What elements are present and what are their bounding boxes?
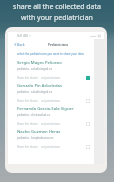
staticText: pediatria - saludintegral.es bbox=[17, 90, 53, 94]
staticText: set permissions bbox=[41, 99, 61, 103]
staticText: Share this doctor bbox=[17, 76, 38, 80]
staticText: Pediatricians bbox=[48, 43, 69, 47]
staticText: set permissions bbox=[41, 76, 61, 80]
button[interactable]: Back bbox=[13, 40, 26, 49]
staticText: 100% bbox=[90, 34, 97, 37]
staticText: Nacho Guzman Heras bbox=[17, 129, 61, 135]
staticText: pediatria - saludintegral.es bbox=[17, 67, 53, 71]
button[interactable]: Select Nacho Guzman Heras bbox=[86, 145, 90, 149]
staticText: share all the collected data bbox=[13, 2, 101, 12]
button[interactable]: Gonzalo Pin Arboledas bbox=[8, 81, 94, 104]
button[interactable]: Fernando Garcia-Sala Viguer bbox=[8, 104, 94, 127]
staticText: with your pediatrician bbox=[21, 13, 93, 23]
staticText: Gonzalo Pin Arboledas bbox=[17, 83, 63, 89]
staticText: 9:41 AM bbox=[17, 34, 28, 38]
staticText: set permissions bbox=[41, 122, 61, 126]
staticText: Sergio Magro Pelicano bbox=[17, 60, 62, 66]
staticText: pediatria - hospitalnuevo.es bbox=[17, 136, 54, 140]
staticText: select the pediatricians you want to sha… bbox=[17, 52, 84, 56]
staticText: pediatria - clinicasalud.es bbox=[17, 113, 51, 117]
staticText: Share this doctor bbox=[17, 145, 38, 149]
button[interactable]: Sergio Magro Pelicano bbox=[8, 58, 94, 81]
staticText: Share this doctor bbox=[17, 122, 38, 126]
button[interactable]: Select Sergio Magro Pelicano bbox=[86, 76, 90, 80]
staticText: set permissions bbox=[41, 145, 61, 149]
staticText: Fernando Garcia-Sala Viguer bbox=[17, 106, 74, 112]
button[interactable]: Select Gonzalo Pin Arboledas bbox=[86, 99, 90, 103]
button[interactable]: Nacho Guzman Heras bbox=[8, 127, 94, 150]
staticText: Back bbox=[17, 42, 25, 47]
staticText: Share this doctor bbox=[17, 99, 38, 103]
button[interactable]: Select Fernando Garcia-Sala Viguer bbox=[86, 122, 90, 126]
